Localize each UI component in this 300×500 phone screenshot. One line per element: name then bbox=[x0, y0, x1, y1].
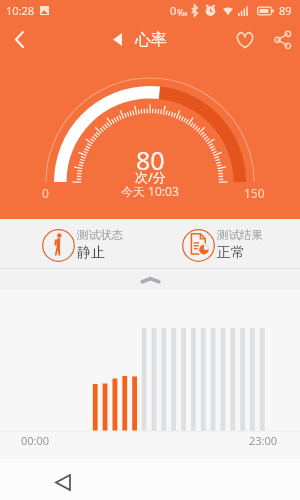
staticText: 今天 10:03 bbox=[121, 183, 179, 199]
staticText: 静止 bbox=[77, 244, 105, 262]
staticText: 0 bbox=[42, 185, 49, 201]
button[interactable]: Back bbox=[0, 20, 40, 58]
button[interactable]: 测试状态 bbox=[0, 228, 150, 262]
staticText: 心率 bbox=[135, 30, 167, 50]
staticText: 10:28 bbox=[6, 3, 35, 18]
staticText: 0 bbox=[170, 3, 177, 18]
button[interactable]: Share bbox=[264, 20, 300, 58]
staticText: 80 bbox=[136, 143, 165, 177]
staticText: 测试状态 bbox=[77, 228, 123, 242]
staticText: 23:00 bbox=[249, 433, 278, 448]
staticText: 89 bbox=[279, 3, 292, 18]
button[interactable]: Favorite bbox=[229, 20, 261, 58]
staticText: 正常 bbox=[217, 244, 245, 262]
button[interactable]: 测试结果 bbox=[150, 228, 300, 262]
staticText: 00:00 bbox=[21, 433, 50, 448]
staticText: 150 bbox=[244, 185, 265, 201]
button[interactable]: Back bbox=[43, 462, 83, 500]
staticText: 次/分 bbox=[135, 168, 166, 186]
staticText: 测试结果 bbox=[217, 228, 263, 242]
staticText: ‰ bbox=[177, 6, 188, 18]
button[interactable]: 心率 bbox=[113, 30, 167, 50]
